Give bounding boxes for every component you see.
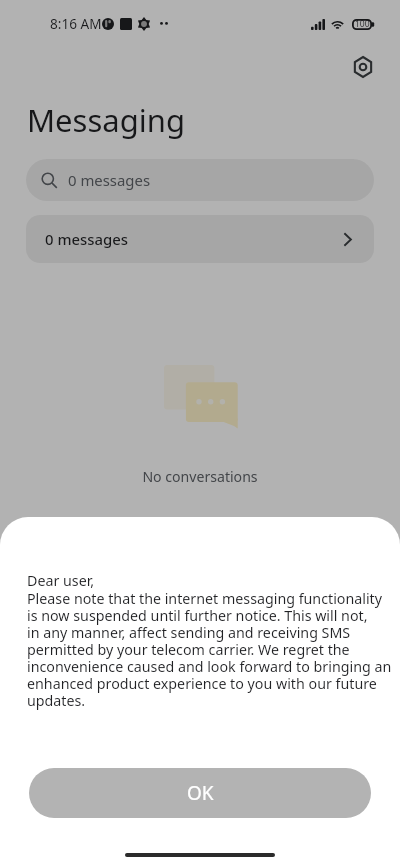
staticText: Dear user, Please note that the internet… [27,571,392,710]
staticText: No conversations [142,467,258,486]
button[interactable]: 0 messages [26,215,374,263]
button[interactable]: OK [29,768,371,818]
staticText: 0 messages [45,229,129,249]
button[interactable]: 0 messages [26,159,374,201]
staticText: OK [187,780,214,806]
button[interactable]: Settings [344,48,382,86]
staticText: 0 messages [68,170,151,190]
staticText: 8:16 AM [50,14,102,33]
staticText: Messaging [27,99,185,141]
staticText: 100 [355,18,370,30]
